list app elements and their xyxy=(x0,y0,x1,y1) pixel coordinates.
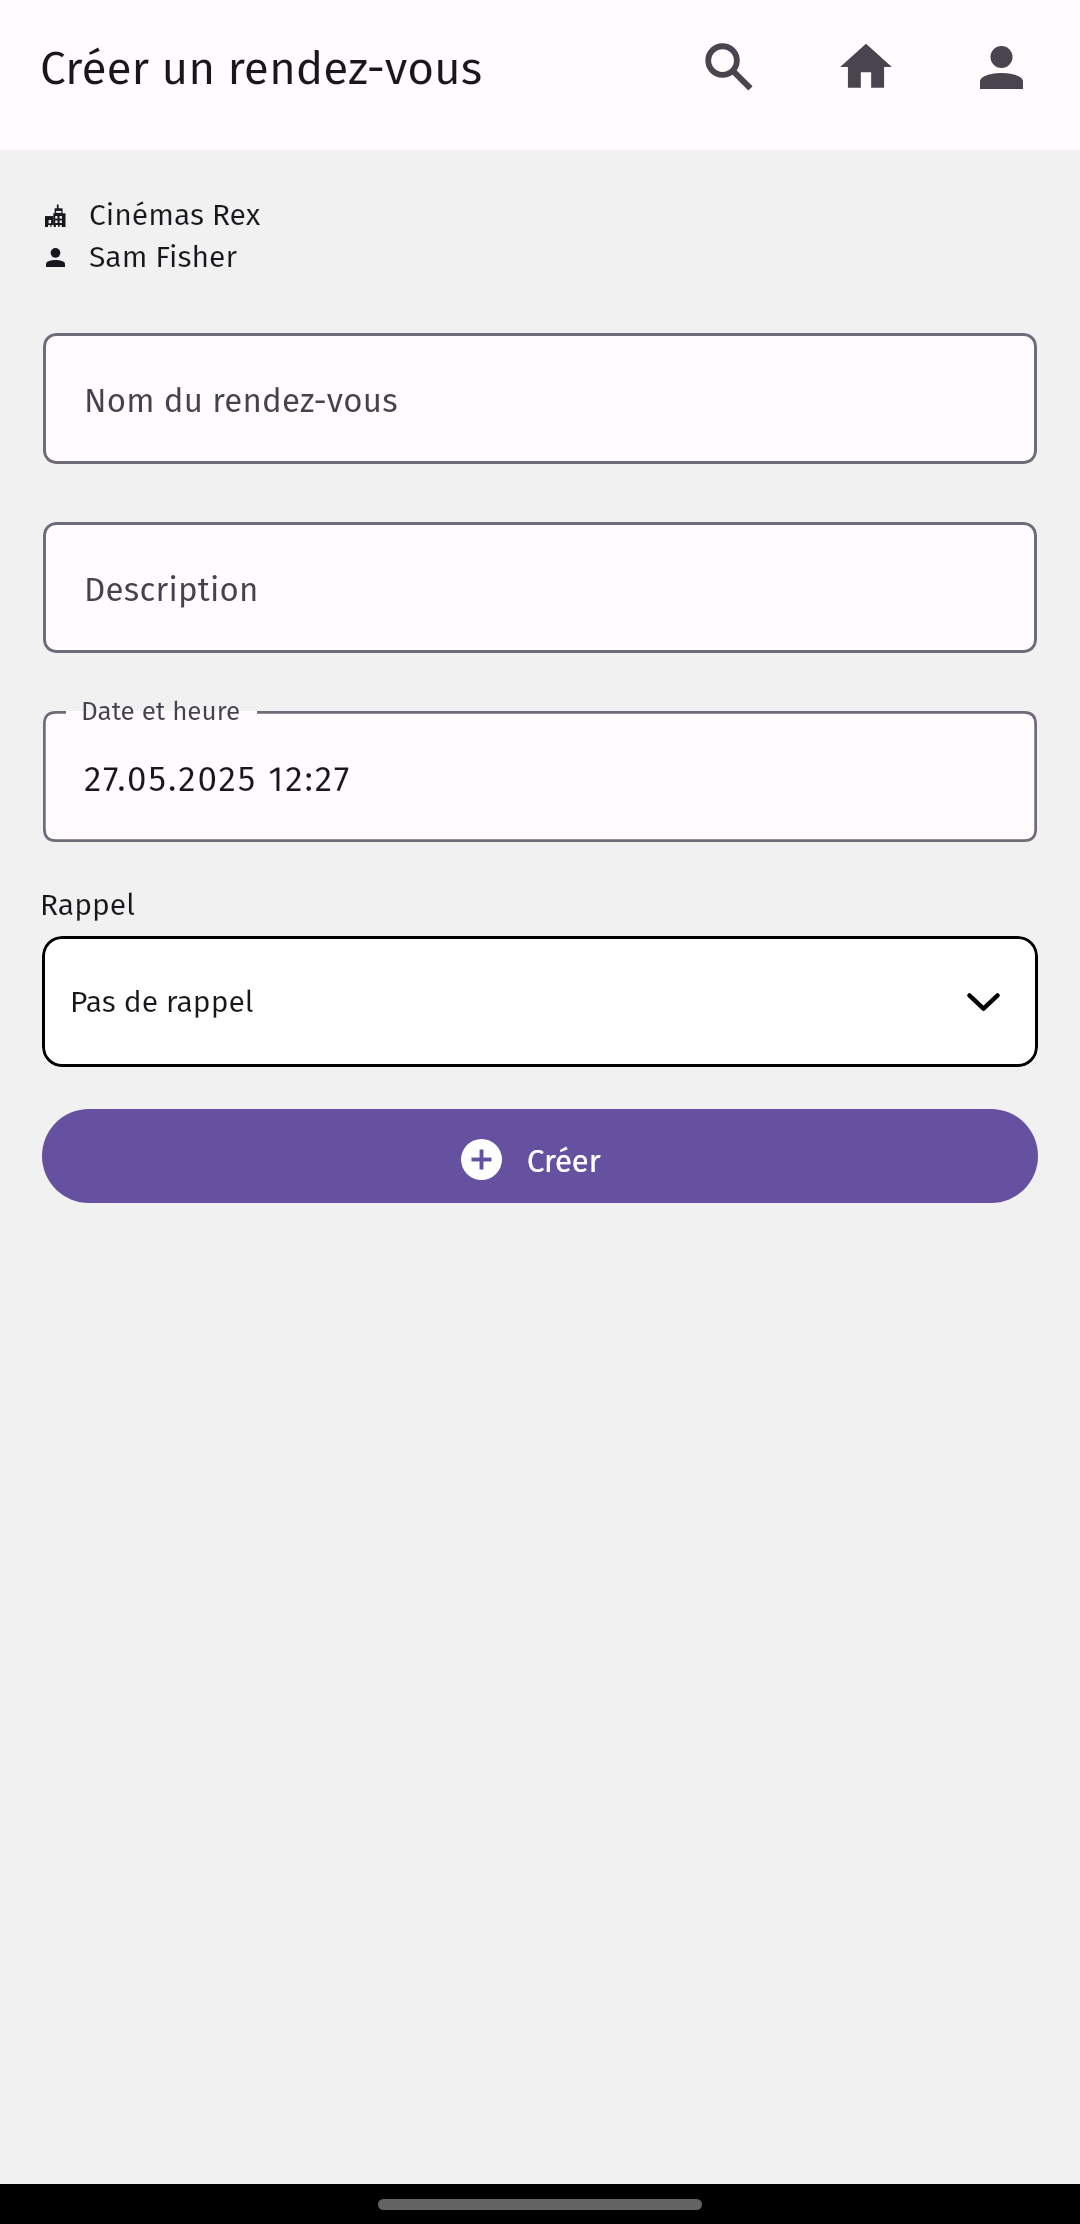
staticText: Créer un rendez-vous xyxy=(40,41,483,96)
button[interactable]: Pas de rappel xyxy=(42,936,1038,1067)
staticText: Nom du rendez-vous xyxy=(84,381,398,421)
staticText: 27.05.2025 12:27 xyxy=(84,758,352,800)
button[interactable]: Créer xyxy=(42,1109,1038,1203)
staticText: Cinémas Rex xyxy=(89,197,261,233)
staticText: Rappel xyxy=(40,887,135,923)
staticText: Sam Fisher xyxy=(89,239,237,275)
staticText: Créer xyxy=(527,1143,601,1180)
button[interactable]: Nom du rendez-vous xyxy=(43,333,1037,464)
staticText: Description xyxy=(84,570,259,610)
staticText: Pas de rappel xyxy=(70,984,254,1020)
button[interactable]: Home xyxy=(796,3,933,129)
button[interactable]: 27.05.2025 12:27 xyxy=(43,711,1037,842)
staticText: Date et heure xyxy=(81,696,241,727)
button[interactable]: Description xyxy=(43,522,1037,653)
button[interactable]: Search xyxy=(659,3,796,129)
button[interactable]: Profile xyxy=(933,3,1070,129)
